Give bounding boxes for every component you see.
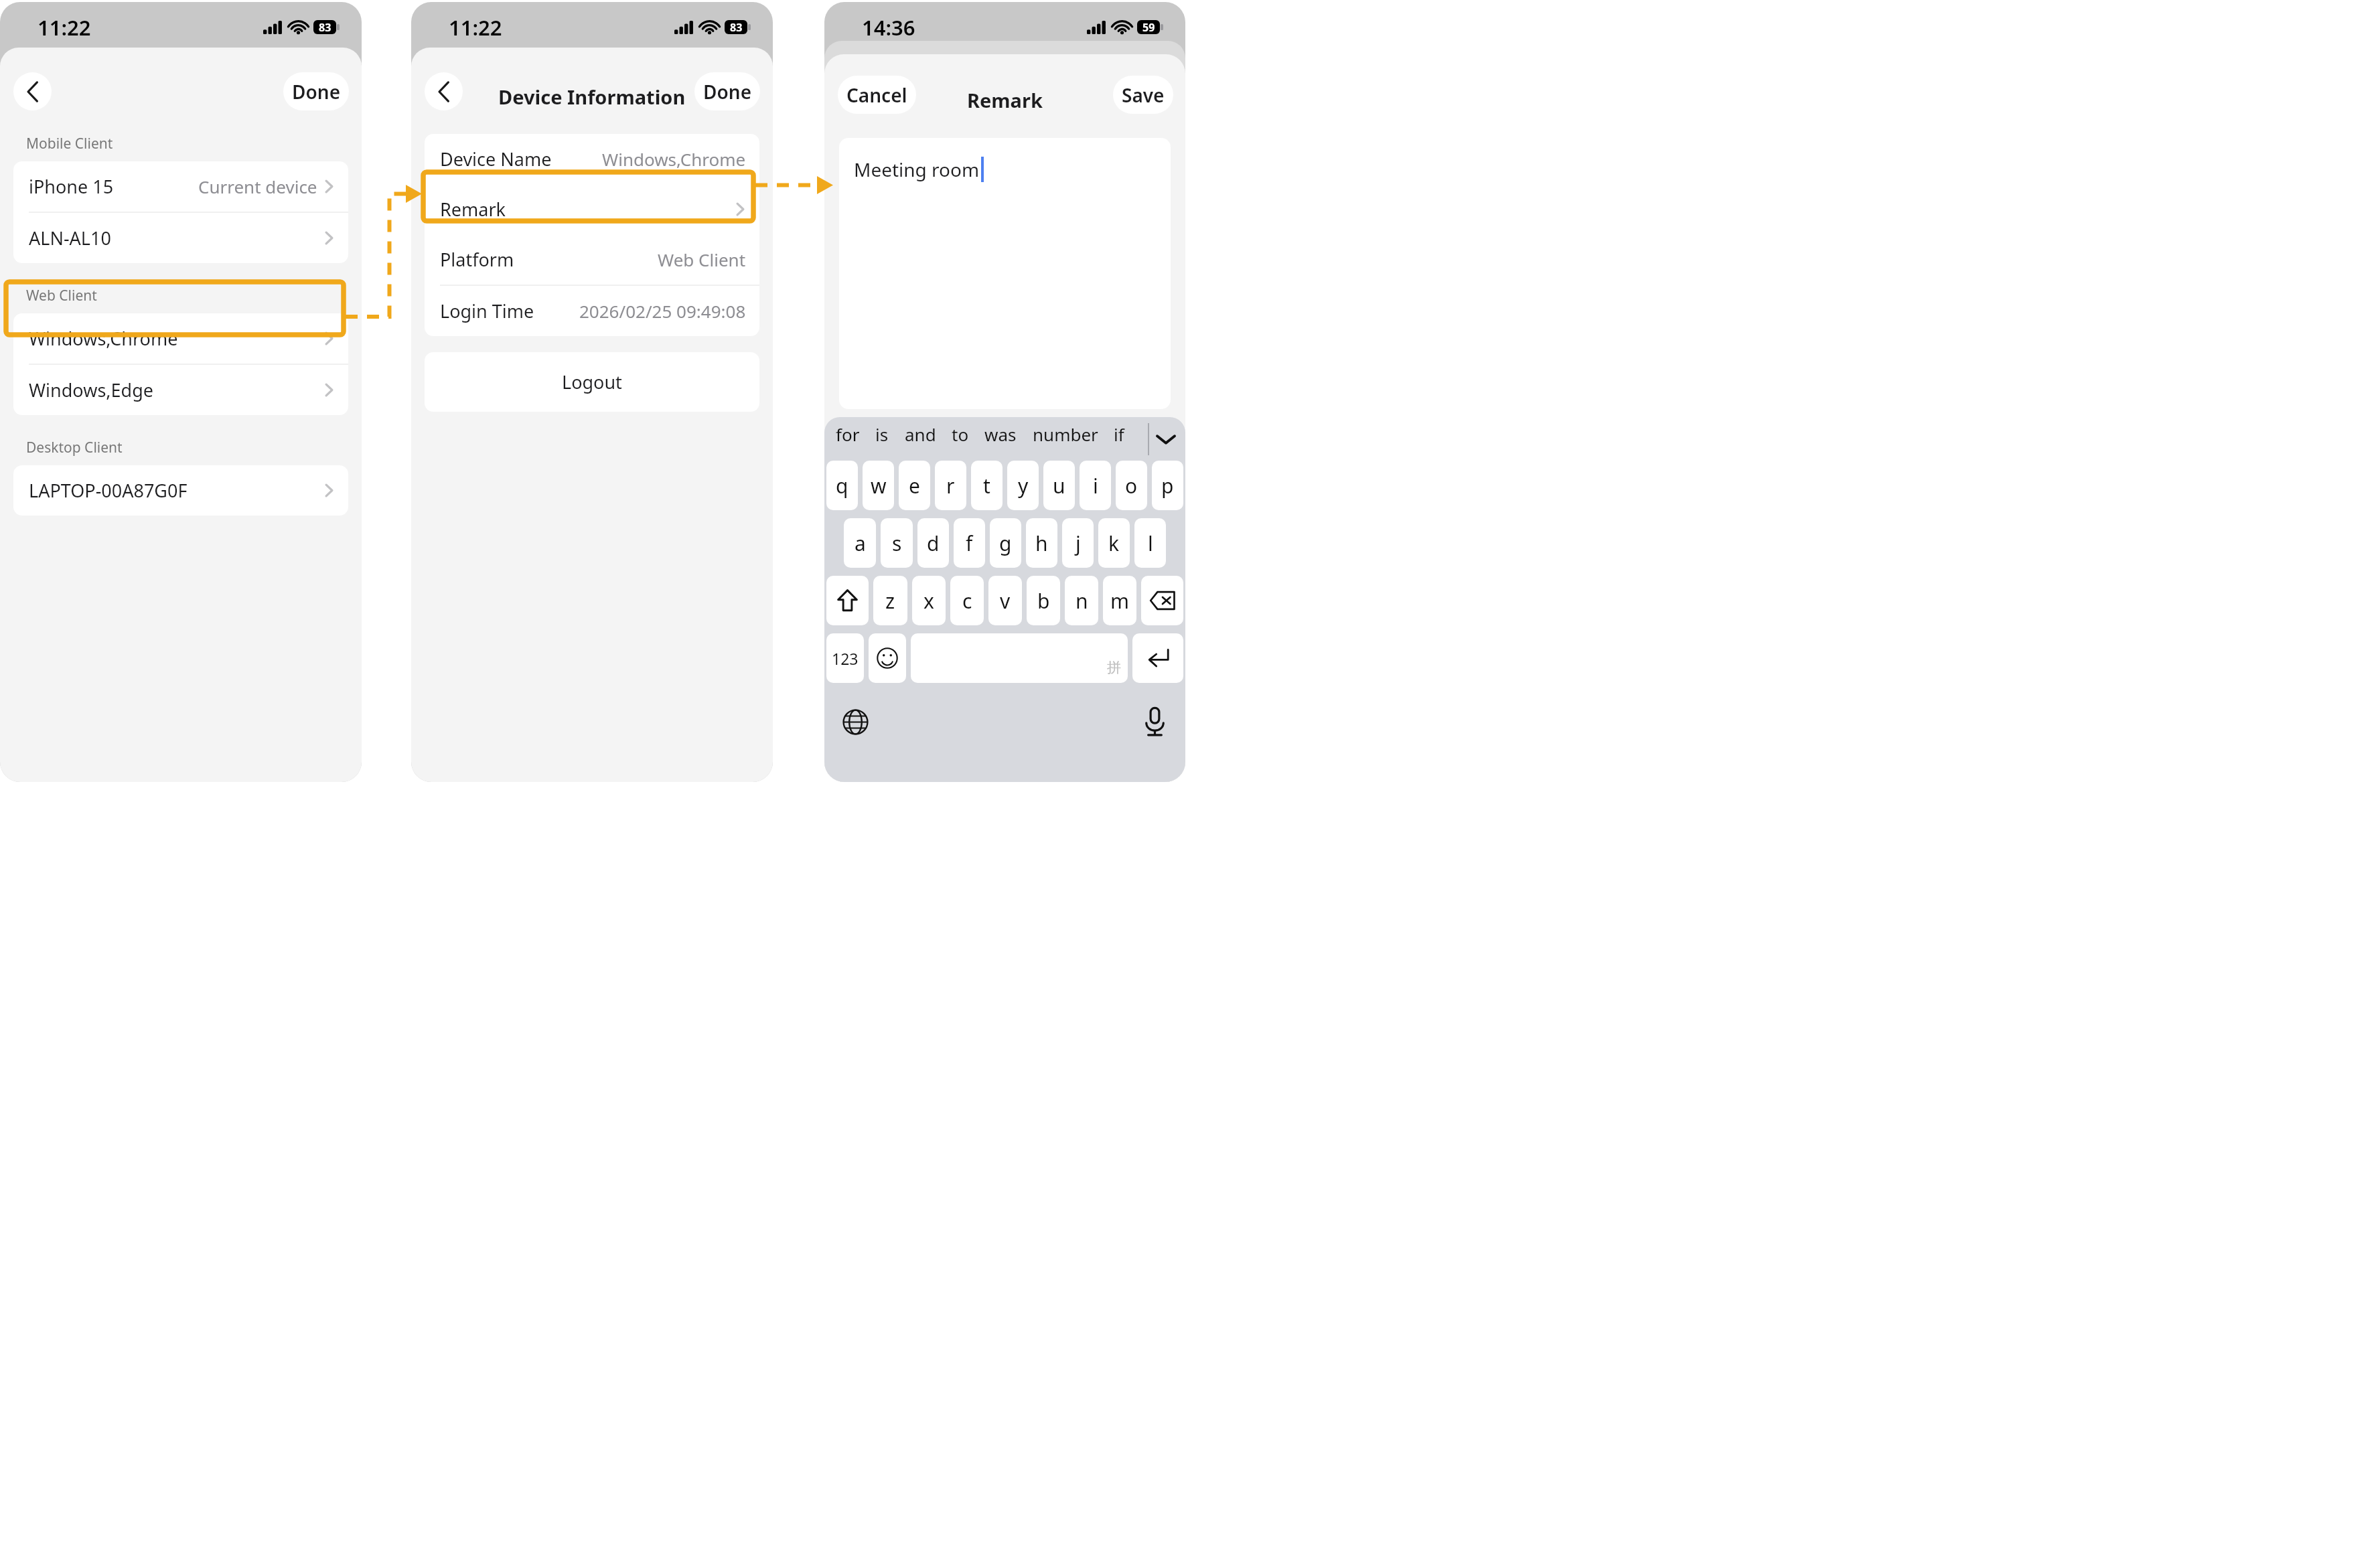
staticText: Current device (198, 175, 317, 198)
button[interactable]: d (917, 518, 949, 568)
button[interactable]: if (1110, 417, 1128, 451)
staticText: f (966, 530, 973, 557)
staticText: Done (703, 79, 752, 104)
staticText: Windows,Edge (29, 378, 154, 402)
staticText: q (836, 472, 848, 499)
button[interactable]: ALN-AL10 (13, 213, 348, 263)
button[interactable]: w (863, 461, 894, 510)
button[interactable]: Shift (826, 576, 869, 625)
staticText: Mobile Client (26, 134, 113, 153)
staticText: Platform (440, 247, 514, 272)
button[interactable]: Device Name (425, 134, 759, 184)
staticText: Remark (967, 87, 1043, 113)
button[interactable]: Change language (839, 706, 871, 738)
button[interactable]: n (1065, 576, 1098, 625)
staticText: j (1076, 530, 1081, 557)
staticText: Meeting room (854, 157, 980, 182)
button[interactable]: Done (694, 72, 760, 110)
button[interactable]: Logout (425, 352, 759, 412)
staticText: Remark (440, 197, 506, 222)
button[interactable]: s (881, 518, 913, 568)
staticText: Login Time (440, 299, 534, 323)
button[interactable]: Voice input (1138, 706, 1171, 738)
staticText: n (1076, 587, 1088, 615)
staticText: Save (1122, 82, 1165, 108)
staticText: a (855, 530, 866, 557)
button[interactable]: Cancel (838, 76, 916, 114)
button[interactable]: y (1007, 461, 1039, 510)
staticText: 11:22 (38, 13, 91, 42)
staticText: c (962, 587, 972, 615)
button[interactable]: Done (283, 72, 349, 110)
staticText: v (1000, 587, 1011, 615)
button[interactable]: u (1043, 461, 1075, 510)
staticText: 11:22 (449, 13, 502, 42)
staticText: was (984, 422, 1017, 446)
button[interactable]: Return (1132, 633, 1183, 683)
staticText: z (885, 587, 895, 615)
button[interactable]: e (899, 461, 930, 510)
button[interactable]: m (1103, 576, 1136, 625)
button[interactable]: Save (1113, 76, 1173, 114)
staticText: Logout (562, 370, 622, 394)
staticText: Desktop Client (26, 438, 123, 457)
button[interactable]: Space (911, 633, 1128, 683)
staticText: Web Client (658, 248, 746, 271)
staticText: 14:36 (862, 13, 915, 42)
staticText: Device Name (440, 147, 552, 171)
button[interactable]: a (844, 518, 876, 568)
staticText: LAPTOP-00A87G0F (29, 478, 188, 503)
staticText: Windows,Chrome (602, 147, 746, 171)
staticText: x (923, 587, 934, 615)
staticText: w (871, 472, 887, 499)
button[interactable]: Hide keyboard (1153, 426, 1179, 453)
button[interactable]: was (980, 417, 1021, 451)
button[interactable]: for (832, 417, 864, 451)
button[interactable]: iPhone 15 (13, 161, 348, 212)
button[interactable]: v (988, 576, 1022, 625)
button[interactable]: k (1098, 518, 1130, 568)
button[interactable]: number (1029, 417, 1102, 451)
button[interactable]: Backspace (1141, 576, 1183, 625)
button[interactable]: c (950, 576, 984, 625)
staticText: d (927, 530, 940, 557)
button[interactable]: o (1116, 461, 1147, 510)
staticText: Device Information (498, 84, 686, 110)
staticText: Done (292, 79, 341, 104)
button[interactable]: Windows,Edge (13, 365, 348, 415)
button[interactable]: x (912, 576, 946, 625)
button[interactable]: q (826, 461, 858, 510)
staticText: k (1108, 530, 1120, 557)
button[interactable]: i (1080, 461, 1111, 510)
button[interactable]: 123 (826, 633, 864, 683)
button[interactable]: Remark (425, 184, 759, 234)
button[interactable]: z (873, 576, 907, 625)
button[interactable]: p (1152, 461, 1183, 510)
button[interactable]: Emoji (869, 633, 906, 683)
button[interactable]: Platform (425, 234, 759, 285)
staticText: r (946, 472, 955, 499)
staticText: g (999, 530, 1012, 557)
button[interactable]: f (954, 518, 985, 568)
button[interactable]: Meeting room (839, 138, 1171, 409)
button[interactable]: Back (13, 72, 52, 110)
staticText: l (1148, 530, 1153, 557)
staticText: t (983, 472, 990, 499)
button[interactable]: to (948, 417, 973, 451)
button[interactable]: r (935, 461, 966, 510)
button[interactable]: Login Time (425, 286, 759, 336)
button[interactable]: and (901, 417, 940, 451)
button[interactable]: j (1062, 518, 1094, 568)
button[interactable]: Windows,Chrome (13, 313, 348, 364)
button[interactable]: is (871, 417, 893, 451)
button[interactable]: h (1026, 518, 1057, 568)
button[interactable]: l (1134, 518, 1166, 568)
staticText: Cancel (846, 82, 907, 108)
button[interactable]: g (990, 518, 1021, 568)
button[interactable]: t (971, 461, 1003, 510)
staticText: e (909, 472, 920, 499)
button[interactable]: LAPTOP-00A87G0F (13, 465, 348, 516)
button[interactable]: Back (425, 72, 463, 110)
staticText: 拼 (1107, 659, 1121, 676)
button[interactable]: b (1027, 576, 1060, 625)
